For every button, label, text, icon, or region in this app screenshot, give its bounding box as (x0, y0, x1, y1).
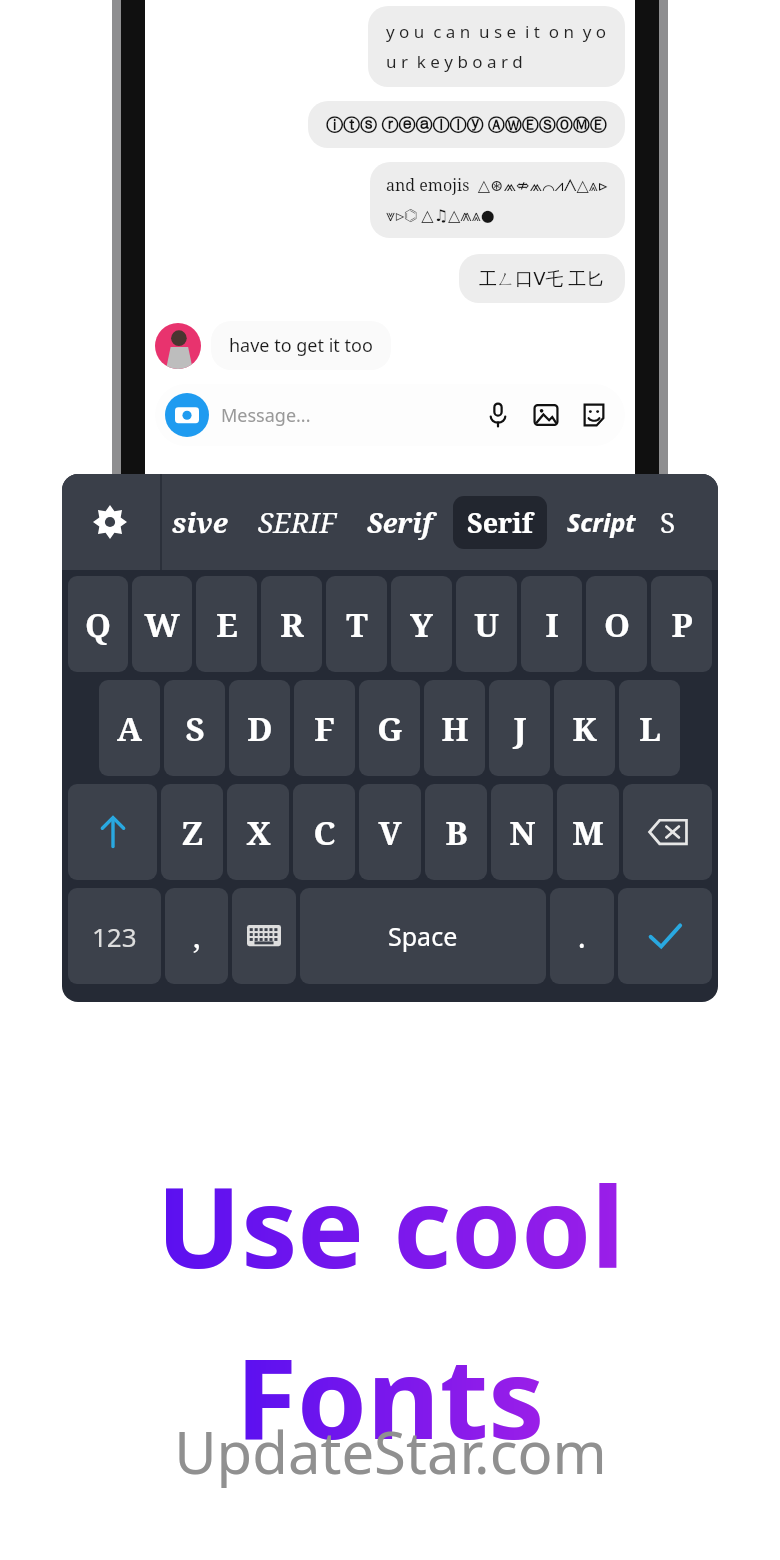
staticText: E (216, 602, 238, 647)
button[interactable]: Serif (365, 504, 435, 541)
staticText: X (246, 810, 271, 855)
staticText: and emojis △⊛⩕⇎⩕⌒⩘⋀△⩓⊳ (386, 174, 609, 196)
button[interactable]: Y (391, 576, 452, 672)
button[interactable]: 123 (68, 888, 161, 984)
staticText: O (604, 602, 630, 647)
button[interactable]: X (227, 784, 289, 880)
staticText: have to get it too (229, 333, 373, 358)
button[interactable]: Voice message (483, 400, 513, 430)
button[interactable]: Enter (618, 888, 712, 984)
staticText: 工ㄥ口ᐯ乇 工匕 (479, 266, 605, 291)
button[interactable]: S (164, 680, 225, 776)
staticText: , (193, 916, 201, 957)
staticText: K (572, 706, 597, 751)
button[interactable]: Backspace (623, 784, 712, 880)
staticText: C (313, 810, 336, 855)
staticText: D (247, 706, 273, 751)
button[interactable]: Q (68, 576, 128, 672)
staticText: S (185, 706, 205, 751)
button[interactable]: SERIF (256, 503, 339, 541)
button[interactable]: K (554, 680, 615, 776)
staticText: Use cool (156, 1148, 625, 1301)
button[interactable]: Camera (155, 384, 625, 446)
staticText: Fonts (235, 1319, 545, 1472)
staticText: V (378, 810, 402, 855)
button[interactable]: E (196, 576, 257, 672)
staticText: Z (181, 810, 204, 855)
button[interactable]: Gallery (531, 400, 561, 430)
button[interactable]: R (261, 576, 322, 672)
button[interactable]: B (425, 784, 487, 880)
staticText: G (377, 706, 403, 751)
staticText: ⩔⊳⌬ △♫△⩕⩓● (386, 204, 495, 226)
button[interactable]: V (359, 784, 421, 880)
button[interactable]: . (550, 888, 614, 984)
staticText: Serif (367, 504, 433, 541)
staticText: Y (410, 602, 433, 647)
staticText: S (660, 503, 676, 541)
button[interactable]: N (491, 784, 553, 880)
staticText: . (578, 916, 586, 957)
staticText: Serif (467, 504, 533, 541)
staticText: A (117, 706, 142, 751)
button[interactable]: M (557, 784, 619, 880)
staticText: SERIF (258, 503, 337, 541)
button[interactable]: 工ㄥ口ᐯ乇 工匕 (459, 254, 625, 303)
staticText: UpdateStar.com (174, 1412, 607, 1491)
button[interactable]: U (456, 576, 517, 672)
staticText: P (671, 602, 693, 647)
button[interactable]: H (424, 680, 485, 776)
button[interactable]: Z (161, 784, 223, 880)
staticText: u r k e y b o a r d (386, 50, 523, 73)
button[interactable]: D (229, 680, 290, 776)
staticText: R (280, 602, 304, 647)
button[interactable]: F (294, 680, 355, 776)
button[interactable]: Shift (68, 784, 157, 880)
button[interactable]: O (586, 576, 647, 672)
button[interactable]: ⓘⓣⓢ ⓡⓔⓐⓛⓛⓨ ⒶⓌⒺⓈⓄⓂⒺ (308, 101, 625, 148)
staticText: H (441, 706, 469, 751)
staticText: y o u c a n u s e i t o n y o (386, 20, 607, 43)
button[interactable]: Script (565, 505, 638, 539)
button[interactable]: C (293, 784, 355, 880)
button[interactable]: A (99, 680, 160, 776)
staticText: T (346, 602, 368, 647)
staticText: 123 (92, 919, 137, 954)
staticText: L (639, 706, 661, 751)
staticText: N (509, 810, 536, 855)
staticText: U (474, 602, 499, 647)
staticText: M (572, 810, 604, 855)
button[interactable]: and emojis △⊛⩕⇎⩕⌒⩘⋀△⩓⊳ (370, 162, 625, 238)
button[interactable]: I (521, 576, 582, 672)
button[interactable]: Serif (453, 496, 547, 549)
button[interactable]: W (132, 576, 192, 672)
staticText: I (545, 602, 559, 647)
button[interactable]: sive (170, 503, 230, 541)
staticText: sive (172, 503, 228, 541)
button[interactable]: Settings (62, 474, 158, 570)
staticText: Script (567, 505, 636, 539)
staticText: Space (388, 919, 458, 953)
button[interactable]: Switch keyboard (232, 888, 296, 984)
button[interactable]: L (619, 680, 680, 776)
staticText: Q (85, 602, 111, 647)
button[interactable]: Stickers (579, 400, 609, 430)
button[interactable]: S (658, 503, 678, 541)
button[interactable]: have to get it too (211, 321, 391, 370)
staticText: F (314, 706, 335, 751)
button[interactable]: y o u c a n u s e i t o n y o (368, 6, 625, 87)
button[interactable]: P (651, 576, 712, 672)
button[interactable]: , (165, 888, 228, 984)
button[interactable]: G (359, 680, 420, 776)
staticText: W (144, 602, 180, 647)
staticText: J (513, 706, 527, 751)
staticText: ⓘⓣⓢ ⓡⓔⓐⓛⓛⓨ ⒶⓌⒺⓈⓄⓂⒺ (326, 113, 607, 136)
staticText: B (445, 810, 468, 855)
button[interactable]: Camera (165, 393, 209, 437)
button[interactable]: T (326, 576, 387, 672)
button[interactable]: J (489, 680, 550, 776)
staticText: Message... (221, 403, 311, 428)
button[interactable]: Space (300, 888, 546, 984)
